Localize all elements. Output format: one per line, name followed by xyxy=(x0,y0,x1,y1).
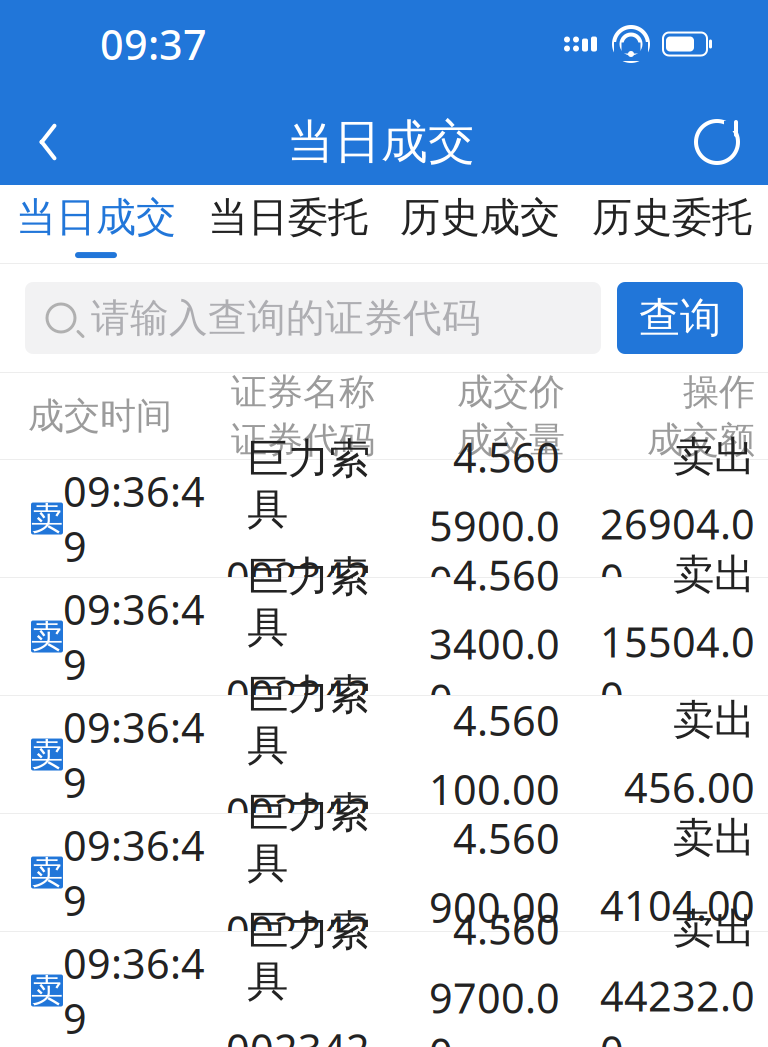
staticText: 4104.00 xyxy=(600,877,755,932)
staticText: 09:37 xyxy=(100,17,207,71)
staticText: 巨力索具 xyxy=(247,669,370,771)
staticText: 09:36:49 xyxy=(63,936,205,1045)
staticText: 卖 xyxy=(31,971,63,1010)
staticText: 当日成交 xyxy=(16,193,176,242)
staticText: 卖出 xyxy=(673,813,755,863)
staticText: 9700.00 xyxy=(429,970,560,1047)
staticText: 09:36:49 xyxy=(63,700,205,809)
staticText: 4.560 xyxy=(453,547,560,602)
button[interactable]: 当日成交 xyxy=(0,185,192,263)
staticText: 002342 xyxy=(226,785,370,840)
staticText: 09:36:49 xyxy=(63,818,205,927)
staticText: 002342 xyxy=(226,1021,370,1047)
button[interactable]: 当日委托 xyxy=(192,185,384,263)
staticText: 操作 xyxy=(683,370,755,414)
staticText: 09:36:49 xyxy=(63,464,205,573)
staticText: 100.00 xyxy=(429,761,560,816)
staticText: 09:36:49 xyxy=(63,582,205,691)
button[interactable]: 卖 xyxy=(0,578,768,696)
staticText: 15504.00 xyxy=(600,614,755,724)
staticText: 44232.00 xyxy=(600,968,755,1047)
button[interactable]: 卖 xyxy=(0,460,768,578)
button[interactable]: 历史成交 xyxy=(384,185,576,263)
staticText: 002342 xyxy=(226,903,370,958)
staticText: 巨力索具 xyxy=(247,905,370,1007)
button[interactable]: 返回 xyxy=(10,99,86,185)
staticText: 4.560 xyxy=(453,901,560,956)
staticText: 卖出 xyxy=(673,431,755,482)
staticText: 卖出 xyxy=(673,695,755,745)
staticText: 卖 xyxy=(31,853,63,892)
staticText: 4.560 xyxy=(453,811,560,865)
staticText: 3400.00 xyxy=(429,616,560,726)
staticText: 成交额 xyxy=(647,418,755,462)
staticText: 证券名称 xyxy=(231,370,375,414)
staticText: 4.560 xyxy=(453,693,560,747)
staticText: 002342 xyxy=(226,549,370,604)
staticText: 历史委托 xyxy=(592,193,752,242)
button[interactable]: 刷新 xyxy=(676,99,758,185)
staticText: 当日成交 xyxy=(287,113,475,171)
staticText: 请输入查询的证券代码 xyxy=(91,294,481,342)
staticText: 卖 xyxy=(31,617,63,656)
staticText: 成交时间 xyxy=(28,394,172,438)
staticText: 456.00 xyxy=(624,759,755,814)
staticText: 巨力索具 xyxy=(247,433,370,535)
button[interactable]: 查询 xyxy=(617,282,743,354)
staticText: 成交价 xyxy=(457,370,565,414)
staticText: 当日委托 xyxy=(208,193,368,242)
staticText: 巨力索具 xyxy=(247,787,370,889)
staticText: 成交量 xyxy=(457,418,565,462)
staticText: 证券代码 xyxy=(231,418,375,462)
button[interactable]: 历史委托 xyxy=(576,185,768,263)
staticText: 5900.00 xyxy=(429,498,560,608)
staticText: 巨力索具 xyxy=(247,551,370,653)
staticText: 002342 xyxy=(226,667,370,722)
button[interactable]: 卖 xyxy=(0,932,768,1047)
staticText: 26904.00 xyxy=(600,496,755,606)
staticText: 4.560 xyxy=(453,429,560,484)
staticText: 查询 xyxy=(639,293,721,343)
staticText: 卖 xyxy=(31,499,63,538)
staticText: 历史成交 xyxy=(400,193,560,242)
staticText: 卖出 xyxy=(673,903,755,954)
button[interactable]: 卖 xyxy=(0,814,768,932)
staticText: 900.00 xyxy=(429,879,560,934)
button[interactable]: 卖 xyxy=(0,696,768,814)
staticText: 卖出 xyxy=(673,549,755,600)
staticText: 卖 xyxy=(31,735,63,774)
